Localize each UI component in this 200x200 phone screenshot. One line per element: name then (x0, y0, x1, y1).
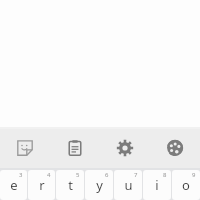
staticText: t (68, 176, 73, 194)
button[interactable]: Clipboard (50, 127, 100, 168)
staticText: 3 (19, 171, 23, 179)
button[interactable]: y (85, 170, 113, 200)
staticText: 5 (76, 171, 80, 179)
staticText: 6 (105, 171, 109, 179)
button[interactable]: Settings (100, 127, 150, 168)
staticText: e (10, 176, 18, 194)
staticText: 4 (47, 171, 51, 179)
button[interactable]: i (143, 170, 171, 200)
staticText: u (124, 176, 133, 194)
button[interactable]: Stickers (0, 127, 50, 168)
staticText: y (96, 176, 103, 194)
staticText: 8 (163, 171, 167, 179)
button[interactable]: u (114, 170, 142, 200)
staticText: r (39, 176, 45, 194)
staticText: o (182, 176, 190, 194)
button[interactable]: o (172, 170, 200, 200)
button[interactable]: t (56, 170, 84, 200)
staticText: i (155, 176, 159, 194)
button[interactable]: Themes (150, 127, 200, 168)
button[interactable]: e (0, 170, 27, 200)
staticText: 9 (192, 171, 196, 179)
staticText: 7 (134, 171, 138, 179)
button[interactable]: r (28, 170, 55, 200)
